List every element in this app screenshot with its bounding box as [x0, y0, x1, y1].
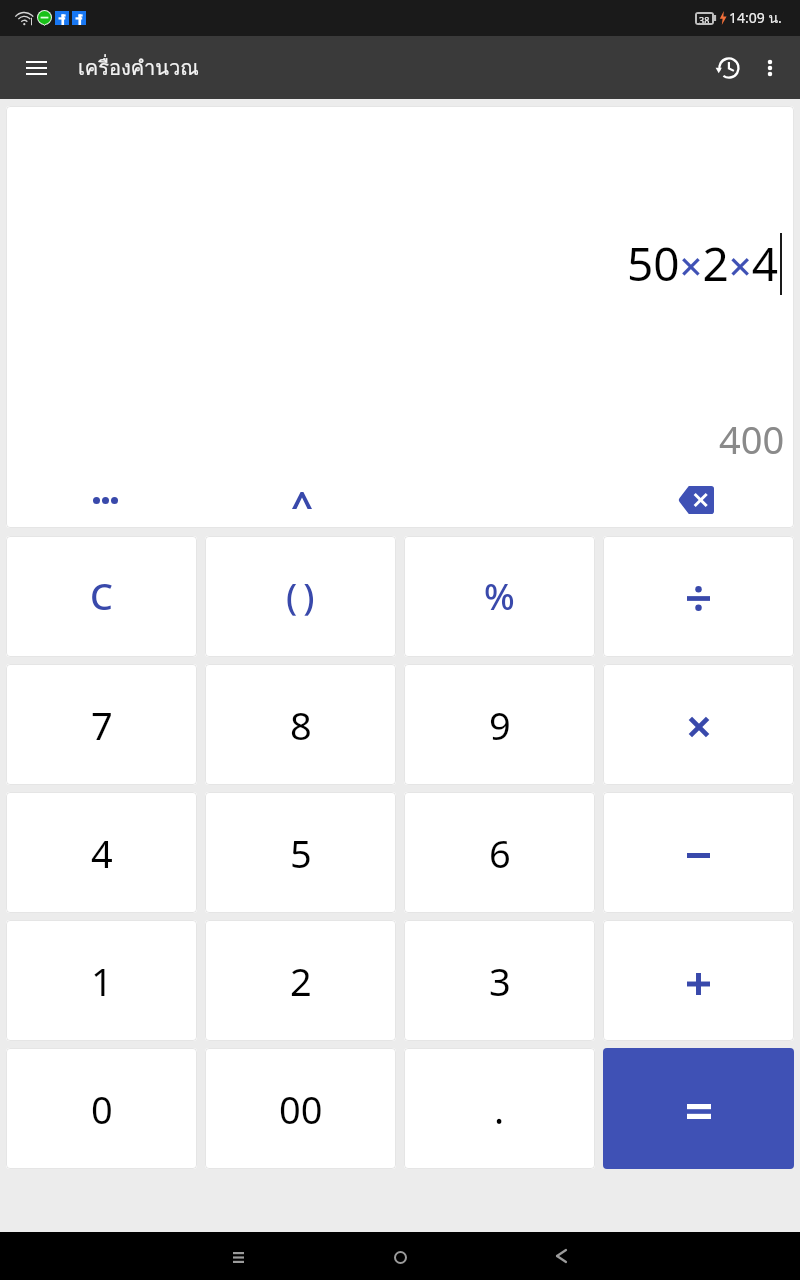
button[interactable]: 0 — [6, 1048, 197, 1169]
staticText: % — [484, 572, 515, 621]
button[interactable]: 8 — [205, 664, 396, 785]
button[interactable]: 5 — [205, 792, 396, 913]
button[interactable]: Back — [531, 1232, 591, 1280]
button[interactable]: 9 — [404, 664, 595, 785]
staticText: 4 — [91, 827, 113, 879]
button[interactable]: Equals — [603, 1048, 794, 1169]
button[interactable]: Expand — [273, 468, 331, 526]
button[interactable]: 1 — [6, 920, 197, 1041]
staticText: 00 — [279, 1083, 323, 1135]
button[interactable]: Home — [370, 1232, 430, 1280]
button[interactable]: Multiply — [603, 664, 794, 785]
staticText: เครื่องคำนวณ — [78, 52, 199, 84]
staticText: 50×2×4 — [627, 232, 779, 295]
button[interactable]: 4 — [6, 792, 197, 913]
button[interactable]: % — [404, 536, 595, 657]
staticText: . — [494, 1083, 505, 1135]
button[interactable]: Backspace — [667, 468, 725, 526]
staticText: 9 — [489, 699, 511, 751]
button[interactable]: C — [6, 536, 197, 657]
button[interactable]: ( ) — [205, 536, 396, 657]
button[interactable]: History — [698, 44, 746, 92]
button[interactable]: 2 — [205, 920, 396, 1041]
button[interactable]: More functions — [76, 468, 134, 526]
staticText: 6 — [489, 827, 511, 879]
staticText: ( ) — [286, 572, 315, 621]
button[interactable]: 3 — [404, 920, 595, 1041]
button[interactable]: More options — [746, 44, 794, 92]
button[interactable]: . — [404, 1048, 595, 1169]
staticText: C — [90, 572, 113, 621]
staticText: 8 — [290, 699, 312, 751]
button[interactable]: 6 — [404, 792, 595, 913]
staticText: 1 — [91, 955, 113, 1007]
staticText: 7 — [91, 699, 113, 751]
staticText: 3 — [489, 955, 511, 1007]
button[interactable]: 00 — [205, 1048, 396, 1169]
staticText: 5 — [290, 827, 312, 879]
staticText: 400 — [719, 413, 785, 465]
staticText: 38 — [699, 14, 710, 23]
button[interactable]: 7 — [6, 664, 197, 785]
button[interactable]: Menu — [12, 44, 60, 92]
staticText: 14:09 น. — [729, 7, 782, 29]
button[interactable]: Divide — [603, 536, 794, 657]
button[interactable]: Plus — [603, 920, 794, 1041]
staticText: 0 — [91, 1083, 113, 1135]
button[interactable]: Minus — [603, 792, 794, 913]
button[interactable]: Recents — [208, 1232, 268, 1280]
staticText: 2 — [290, 955, 312, 1007]
